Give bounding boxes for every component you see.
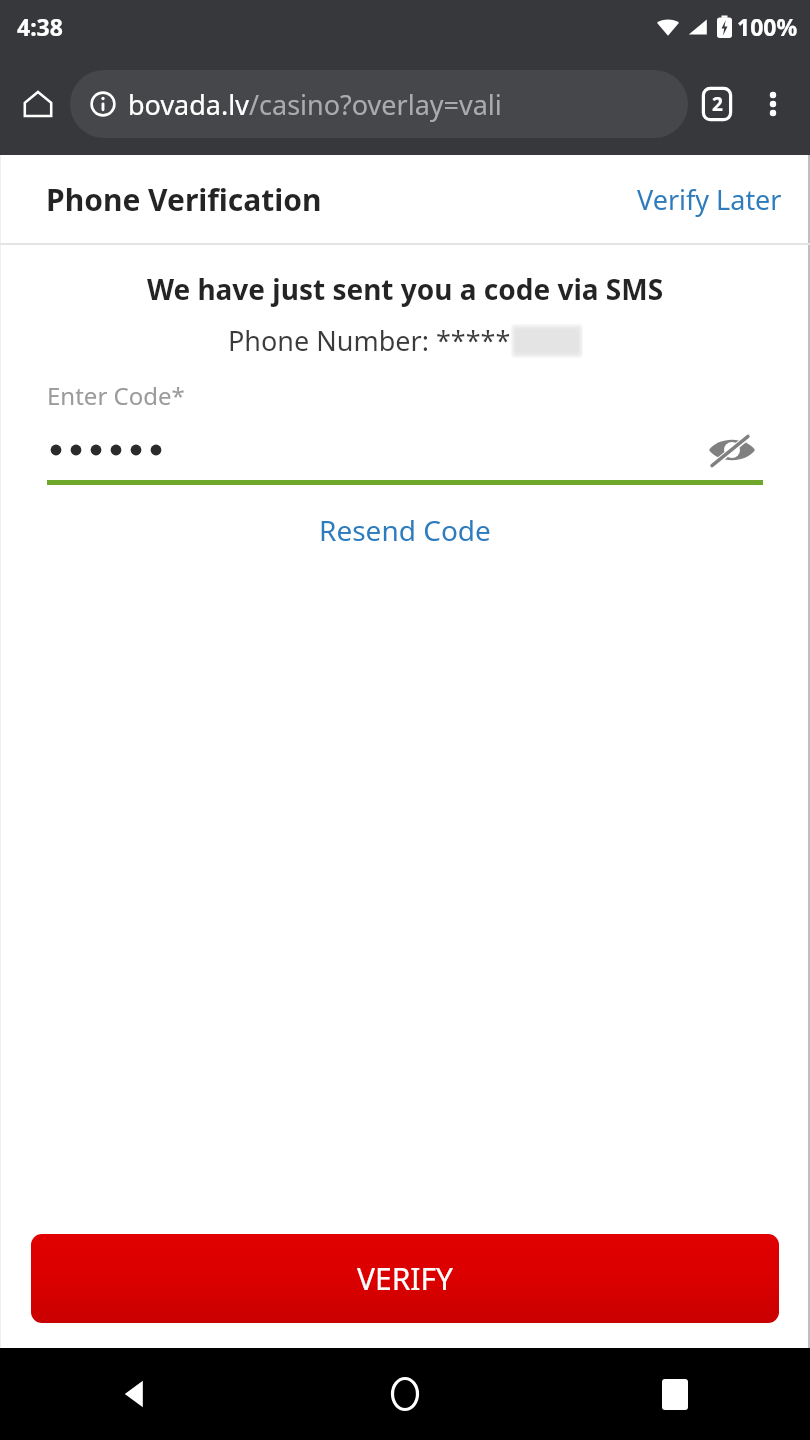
staticText: 2 bbox=[712, 91, 723, 117]
staticText: We have just sent you a code via SMS bbox=[24, 270, 786, 308]
staticText: bovada.lv bbox=[128, 86, 249, 123]
staticText: VERIFY bbox=[357, 1258, 454, 1299]
button[interactable]: bovada.lv bbox=[70, 70, 688, 138]
staticText: Phone Number: ***** bbox=[228, 322, 511, 359]
button[interactable]: Recent apps bbox=[540, 1348, 810, 1440]
button[interactable]: Show code bbox=[701, 426, 763, 474]
staticText: /casino?overlay=vali bbox=[249, 86, 502, 123]
staticText: Verify Later bbox=[637, 181, 782, 218]
button[interactable]: VERIFY bbox=[31, 1234, 779, 1323]
button[interactable]: More options bbox=[746, 77, 800, 131]
staticText: 4:38 bbox=[17, 11, 63, 42]
staticText: Enter Code* bbox=[47, 379, 185, 412]
button[interactable]: Home bbox=[270, 1348, 540, 1440]
button[interactable]: Home bbox=[10, 76, 66, 132]
button[interactable]: Tabs, 2 open bbox=[688, 75, 746, 133]
button[interactable]: Verify Later bbox=[609, 171, 810, 228]
staticText: 100% bbox=[737, 11, 798, 42]
staticText: Phone Verification bbox=[46, 179, 322, 220]
button[interactable]: Resend Code bbox=[295, 501, 515, 559]
staticText: Resend Code bbox=[319, 511, 491, 549]
button[interactable]: Back bbox=[0, 1348, 270, 1440]
